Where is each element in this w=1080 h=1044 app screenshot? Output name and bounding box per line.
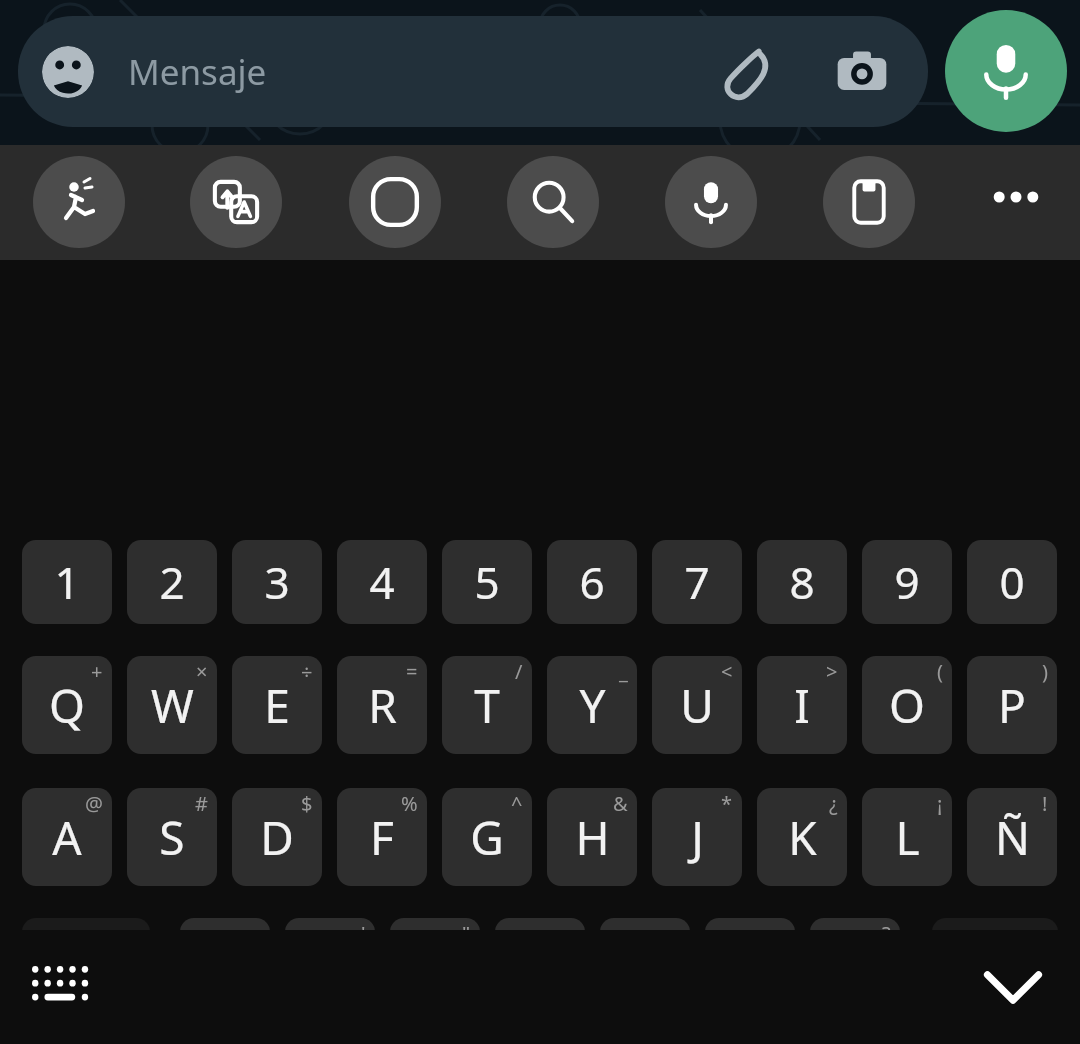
button[interactable]: Emoji [42, 46, 94, 98]
button[interactable]: Search [507, 156, 599, 248]
button[interactable]: Backspace [932, 918, 1058, 1016]
staticText: _ [619, 658, 628, 685]
staticText: ! [1042, 790, 1048, 817]
button[interactable]: X [285, 918, 375, 1016]
staticText: = [406, 658, 418, 685]
button[interactable]: 2 [127, 540, 217, 624]
button[interactable]: 9 [862, 540, 952, 624]
button[interactable]: P [967, 656, 1057, 754]
button[interactable]: 0 [967, 540, 1057, 624]
button[interactable]: Emoji [18, 16, 928, 127]
button[interactable]: Translate [190, 156, 282, 248]
staticText: A [52, 806, 82, 869]
button[interactable]: H [547, 788, 637, 886]
staticText: % [401, 790, 418, 817]
staticText: > [826, 658, 838, 685]
staticText: U [680, 674, 714, 737]
staticText: 1 [54, 552, 80, 612]
staticText: ¡ [937, 790, 943, 817]
staticText: Ñ [995, 806, 1030, 869]
staticText: I [794, 674, 810, 737]
staticText: L [895, 806, 920, 869]
button[interactable]: 4 [337, 540, 427, 624]
button[interactable]: Switch keyboard [14, 952, 106, 1022]
staticText: W [151, 674, 194, 737]
staticText: ¿ [829, 790, 838, 817]
button[interactable]: 7 [652, 540, 742, 624]
button[interactable]: K [757, 788, 847, 886]
staticText: Q [49, 674, 85, 737]
button[interactable]: Camera [830, 40, 894, 104]
button[interactable]: U [652, 656, 742, 754]
staticText: 7 [684, 552, 710, 612]
staticText: 3 [264, 552, 290, 612]
button[interactable]: R [337, 656, 427, 754]
button[interactable]: Hide keyboard [958, 948, 1068, 1026]
button[interactable]: 1 [22, 540, 112, 624]
button[interactable]: G [442, 788, 532, 886]
staticText: P [998, 674, 1026, 737]
staticText: , [780, 920, 786, 947]
button[interactable]: W [127, 656, 217, 754]
button[interactable]: E [232, 656, 322, 754]
staticText: @ [85, 790, 103, 817]
staticText: ( [937, 658, 943, 685]
button[interactable]: M [810, 918, 900, 1016]
button[interactable]: L [862, 788, 952, 886]
button[interactable]: More options [975, 156, 1057, 238]
staticText: 5 [474, 552, 500, 612]
staticText: T [474, 674, 500, 737]
button[interactable]: Ñ [967, 788, 1057, 886]
staticText: 6 [579, 552, 605, 612]
button[interactable]: D [232, 788, 322, 886]
button[interactable]: Z [180, 918, 270, 1016]
staticText: ^ [511, 790, 523, 817]
button[interactable]: 8 [757, 540, 847, 624]
button[interactable]: Voice message [945, 10, 1067, 132]
button[interactable]: Voice input [665, 156, 757, 248]
button[interactable]: F [337, 788, 427, 886]
button[interactable]: S [127, 788, 217, 886]
button[interactable]: N [705, 918, 795, 1016]
button[interactable]: J [652, 788, 742, 886]
button[interactable]: C [390, 918, 480, 1016]
staticText: & [613, 790, 628, 817]
staticText: Mensaje [128, 48, 267, 96]
button[interactable]: Clipboard [823, 156, 915, 248]
button[interactable]: 5 [442, 540, 532, 624]
button[interactable]: V [495, 918, 585, 1016]
button[interactable]: T [442, 656, 532, 754]
staticText: $ [301, 790, 313, 817]
button[interactable]: Stickers [33, 156, 125, 248]
button[interactable]: Attach [714, 40, 778, 104]
button[interactable]: A [22, 788, 112, 886]
staticText: D [260, 806, 294, 869]
button[interactable]: 6 [547, 540, 637, 624]
staticText: O [889, 674, 925, 737]
staticText: F [370, 806, 394, 869]
staticText: : [570, 920, 576, 947]
staticText: × [196, 658, 208, 685]
staticText: " [462, 920, 471, 947]
staticText: 2 [159, 552, 185, 612]
button[interactable]: 3 [232, 540, 322, 624]
button[interactable]: Shift [22, 918, 150, 1016]
button[interactable]: B [600, 918, 690, 1016]
button[interactable]: Y [547, 656, 637, 754]
button[interactable]: O [862, 656, 952, 754]
staticText: / [515, 658, 523, 685]
button[interactable]: I [757, 656, 847, 754]
staticText: K [788, 806, 817, 869]
button[interactable]: Q [22, 656, 112, 754]
staticText: ? [882, 920, 891, 947]
button[interactable]: Passwords [349, 156, 441, 248]
staticText: R [368, 674, 397, 737]
staticText: ) [1042, 658, 1048, 685]
staticText: H [575, 806, 610, 869]
